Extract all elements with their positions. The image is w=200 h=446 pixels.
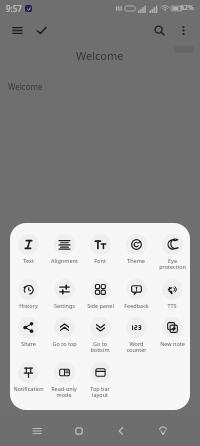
staticText: Font bbox=[94, 257, 106, 264]
staticText: Alignment bbox=[51, 257, 78, 264]
staticText: Share bbox=[21, 340, 36, 347]
button[interactable]: Eye protection bbox=[154, 231, 190, 274]
staticText: Go to top bbox=[52, 340, 77, 347]
staticText: Welcome bbox=[76, 48, 124, 63]
staticText: Feedback bbox=[124, 302, 149, 309]
staticText: Notification bbox=[13, 385, 44, 392]
staticText: History bbox=[19, 302, 38, 309]
staticText: Theme bbox=[127, 257, 145, 264]
button[interactable]: Word counter bbox=[118, 314, 154, 357]
button[interactable]: Text bbox=[10, 231, 46, 267]
button[interactable]: More options bbox=[174, 21, 192, 39]
staticText: Eye protection bbox=[159, 257, 186, 271]
button[interactable]: Top bar layout bbox=[82, 359, 118, 402]
staticText: TTS bbox=[167, 302, 177, 309]
staticText: Go to bottom bbox=[90, 340, 110, 354]
button[interactable]: Read-only mode bbox=[46, 359, 82, 402]
button[interactable]: New note bbox=[154, 314, 190, 350]
button[interactable]: Assistant bbox=[153, 421, 173, 441]
button[interactable]: Settings bbox=[46, 276, 82, 312]
button[interactable]: Confirm bbox=[32, 21, 50, 39]
button[interactable]: Home bbox=[69, 421, 89, 441]
button[interactable]: Go to top bbox=[46, 314, 82, 350]
button[interactable]: Feedback bbox=[118, 276, 154, 312]
staticText: Top bar layout bbox=[90, 385, 110, 399]
staticText: Read-only mode bbox=[51, 385, 77, 399]
staticText: 9:57 bbox=[6, 3, 22, 14]
button[interactable]: Search bbox=[150, 21, 168, 39]
staticText: Welcome bbox=[8, 81, 43, 92]
button[interactable]: Share bbox=[10, 314, 46, 350]
staticText: Side panel bbox=[87, 302, 114, 309]
button[interactable]: Theme bbox=[118, 231, 154, 267]
staticText: Settings bbox=[54, 302, 75, 309]
button[interactable]: Recents bbox=[27, 421, 47, 441]
button[interactable]: Side panel bbox=[82, 276, 118, 312]
button[interactable]: Alignment bbox=[46, 231, 82, 267]
button[interactable]: Go to bottom bbox=[82, 314, 118, 357]
button[interactable]: TTS bbox=[154, 276, 190, 312]
button[interactable]: History bbox=[10, 276, 46, 312]
button[interactable]: Menu bbox=[8, 21, 26, 39]
staticText: New note bbox=[160, 340, 185, 347]
staticText: Text bbox=[23, 257, 34, 264]
staticText: Word counter bbox=[126, 340, 147, 354]
button[interactable]: Back bbox=[111, 421, 131, 441]
staticText: 62% bbox=[180, 3, 194, 13]
button[interactable]: Notification bbox=[10, 359, 46, 395]
button[interactable]: Font bbox=[82, 231, 118, 267]
